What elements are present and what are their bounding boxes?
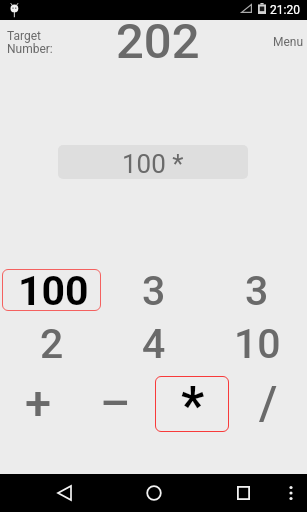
button[interactable]: Plus xyxy=(1,376,76,432)
staticText: – xyxy=(100,375,131,430)
button[interactable]: 3 xyxy=(102,267,204,309)
staticText: 21:20 xyxy=(270,3,300,17)
button[interactable]: Multiply xyxy=(155,376,229,432)
staticText: * xyxy=(181,376,205,432)
button[interactable]: Home xyxy=(134,474,174,512)
staticText: 3 xyxy=(245,267,269,309)
staticText: 10 xyxy=(234,320,281,362)
button[interactable]: Recent apps xyxy=(223,474,263,512)
button[interactable]: 100 xyxy=(2,269,101,311)
button[interactable]: Divide xyxy=(231,376,306,432)
button[interactable]: 10 xyxy=(205,320,307,362)
staticText: 2 xyxy=(40,320,64,362)
button[interactable]: Menu xyxy=(269,32,307,52)
staticText: Menu xyxy=(273,35,304,49)
staticText: 4 xyxy=(142,320,166,362)
button[interactable]: Back xyxy=(44,474,84,512)
staticText: 202 xyxy=(116,13,200,70)
staticText: + xyxy=(25,375,52,430)
staticText: 100 * xyxy=(122,149,184,179)
button[interactable]: 2 xyxy=(0,320,102,362)
staticText: 3 xyxy=(142,267,166,309)
button[interactable]: More options xyxy=(271,474,307,512)
staticText: 100 xyxy=(18,267,89,309)
staticText: Target Number: xyxy=(7,29,53,56)
button[interactable]: 4 xyxy=(102,320,204,362)
staticText: / xyxy=(259,375,278,430)
button[interactable]: Minus xyxy=(78,376,153,432)
button[interactable]: 100 * xyxy=(58,145,248,179)
button[interactable]: 3 xyxy=(205,267,307,309)
